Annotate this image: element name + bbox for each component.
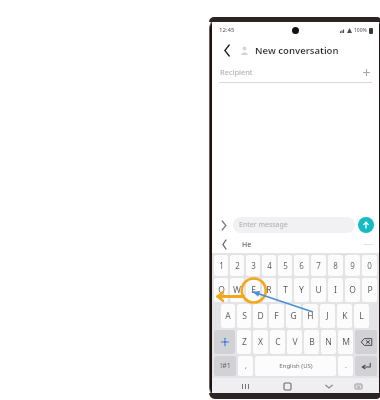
button[interactable]: Z [237,330,251,354]
staticText: 100% [354,27,367,34]
button[interactable]: Previous suggestions [218,238,231,251]
button[interactable]: Shift [214,330,235,354]
staticText: 7 [316,260,321,271]
button[interactable]: 2 [230,255,244,276]
button[interactable]: Backspace [355,330,377,354]
button[interactable]: English (US) [255,356,336,376]
button[interactable]: N [321,330,336,354]
button[interactable]: Recents [238,379,252,393]
staticText: 8 [333,260,338,271]
button[interactable]: 1 [214,255,228,276]
staticText: Y [299,284,304,296]
staticText: J [326,310,329,322]
staticText: Q [218,284,225,296]
button[interactable]: 7 [311,255,326,276]
staticText: V [292,336,298,348]
staticText: K [342,310,348,322]
button[interactable]: 9 [345,255,360,276]
button[interactable]: O [345,278,360,302]
button[interactable]: B [304,330,319,354]
button[interactable]: F [269,304,284,328]
staticText: G [290,310,297,322]
staticText: Recipient [220,67,253,77]
button[interactable]: E [246,278,260,302]
button[interactable]: He [239,239,255,251]
button[interactable]: Home [280,379,294,393]
button[interactable]: Contacts [236,42,252,58]
staticText: L [359,310,364,322]
button[interactable]: Send [358,217,374,233]
staticText: !#1 [220,361,231,371]
button[interactable]: C [270,330,285,354]
button[interactable]: X [253,330,268,354]
button[interactable]: K [337,304,352,328]
staticText: English (US) [279,362,313,370]
staticText: 4 [267,260,272,271]
button[interactable]: Hide keyboard [322,379,336,393]
staticText: U [315,284,322,296]
staticText: I [334,284,337,296]
staticText: N [325,336,332,348]
staticText: , [245,361,247,371]
staticText: Enter message [239,220,288,230]
button[interactable]: Expand options [217,218,231,232]
button[interactable]: , [238,356,253,376]
button[interactable]: P [362,278,377,302]
button[interactable]: 3 [246,255,260,276]
button[interactable]: A [221,304,235,328]
staticText: 12:45 [219,26,235,34]
staticText: 2 [235,260,240,271]
button[interactable]: 0 [362,255,377,276]
staticText: E [251,284,256,296]
staticText: F [274,310,279,322]
staticText: H [307,310,314,322]
staticText: W [233,284,241,296]
staticText: P [367,284,373,296]
button[interactable]: Switch keyboard [351,379,365,393]
staticText: C [275,336,281,348]
button[interactable]: Add recipient [360,66,372,78]
staticText: O [349,284,356,296]
staticText: A [225,310,231,322]
button[interactable]: W [230,278,244,302]
button[interactable]: L [354,304,369,328]
button[interactable]: Enter message [233,217,355,233]
staticText: B [309,336,315,348]
button[interactable]: 4 [262,255,276,276]
button[interactable]: D [253,304,267,328]
button[interactable]: H [303,304,318,328]
staticText: D [257,310,264,322]
staticText: 9 [350,260,355,271]
staticText: . [345,361,347,371]
button[interactable]: R [262,278,276,302]
button[interactable]: Y [294,278,309,302]
button[interactable]: J [320,304,335,328]
staticText: Z [242,336,247,348]
staticText: 0 [367,260,372,271]
staticText: R [266,284,272,296]
button[interactable]: . [338,356,353,376]
staticText: New conversation [255,44,339,57]
staticText: M [342,336,350,348]
button[interactable]: Enter [355,356,377,376]
button[interactable]: 8 [328,255,343,276]
button[interactable]: Q [214,278,228,302]
button[interactable]: Back [218,41,236,59]
button[interactable]: G [286,304,301,328]
staticText: 5 [283,260,288,271]
staticText: 3 [251,260,256,271]
staticText: 1 [219,260,224,271]
staticText: T [283,284,288,296]
button[interactable]: !#1 [214,356,236,376]
staticText: X [258,336,263,348]
button[interactable]: Recipient [212,62,379,82]
button[interactable]: S [237,304,251,328]
button[interactable]: T [278,278,292,302]
button[interactable]: V [287,330,302,354]
button[interactable]: 5 [278,255,292,276]
button[interactable]: U [311,278,326,302]
button[interactable]: 6 [294,255,309,276]
button[interactable]: M [338,330,353,354]
button[interactable]: I [328,278,343,302]
staticText: 6 [299,260,304,271]
